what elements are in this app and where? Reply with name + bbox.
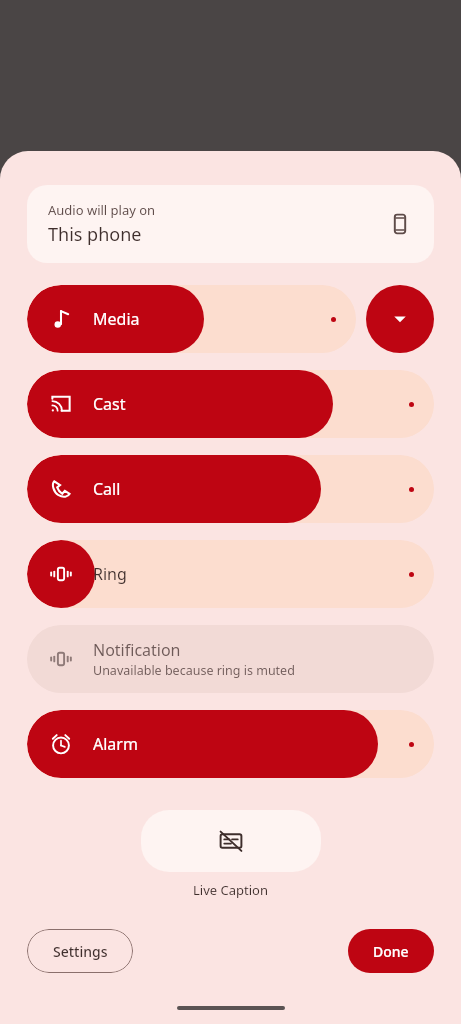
other: Phone output [387,211,413,237]
button[interactable]: Audio will play on [27,185,434,263]
staticText: Media [93,308,140,330]
button[interactable]: Live Caption [141,810,321,872]
button[interactable]: Expand media output [366,285,434,353]
staticText: Settings [53,942,108,961]
staticText: Cast [93,393,126,415]
button[interactable]: Settings [27,929,133,973]
staticText: Audio will play on [48,201,156,219]
staticText: Notification [93,639,181,661]
staticText: Call [93,478,121,500]
staticText: Live Caption [193,881,268,899]
button[interactable]: Cast [27,370,434,438]
staticText: Alarm [93,733,138,755]
button[interactable]: Notification [27,625,434,693]
button[interactable]: Media [27,285,356,353]
staticText: This phone [48,222,142,247]
button[interactable]: Alarm [27,710,434,778]
button[interactable]: Done [348,929,434,973]
staticText: Done [373,942,409,961]
staticText: Ring [93,563,127,585]
button[interactable]: Call [27,455,434,523]
staticText: Unavailable because ring is muted [93,662,295,679]
button[interactable]: Ring [27,540,434,608]
